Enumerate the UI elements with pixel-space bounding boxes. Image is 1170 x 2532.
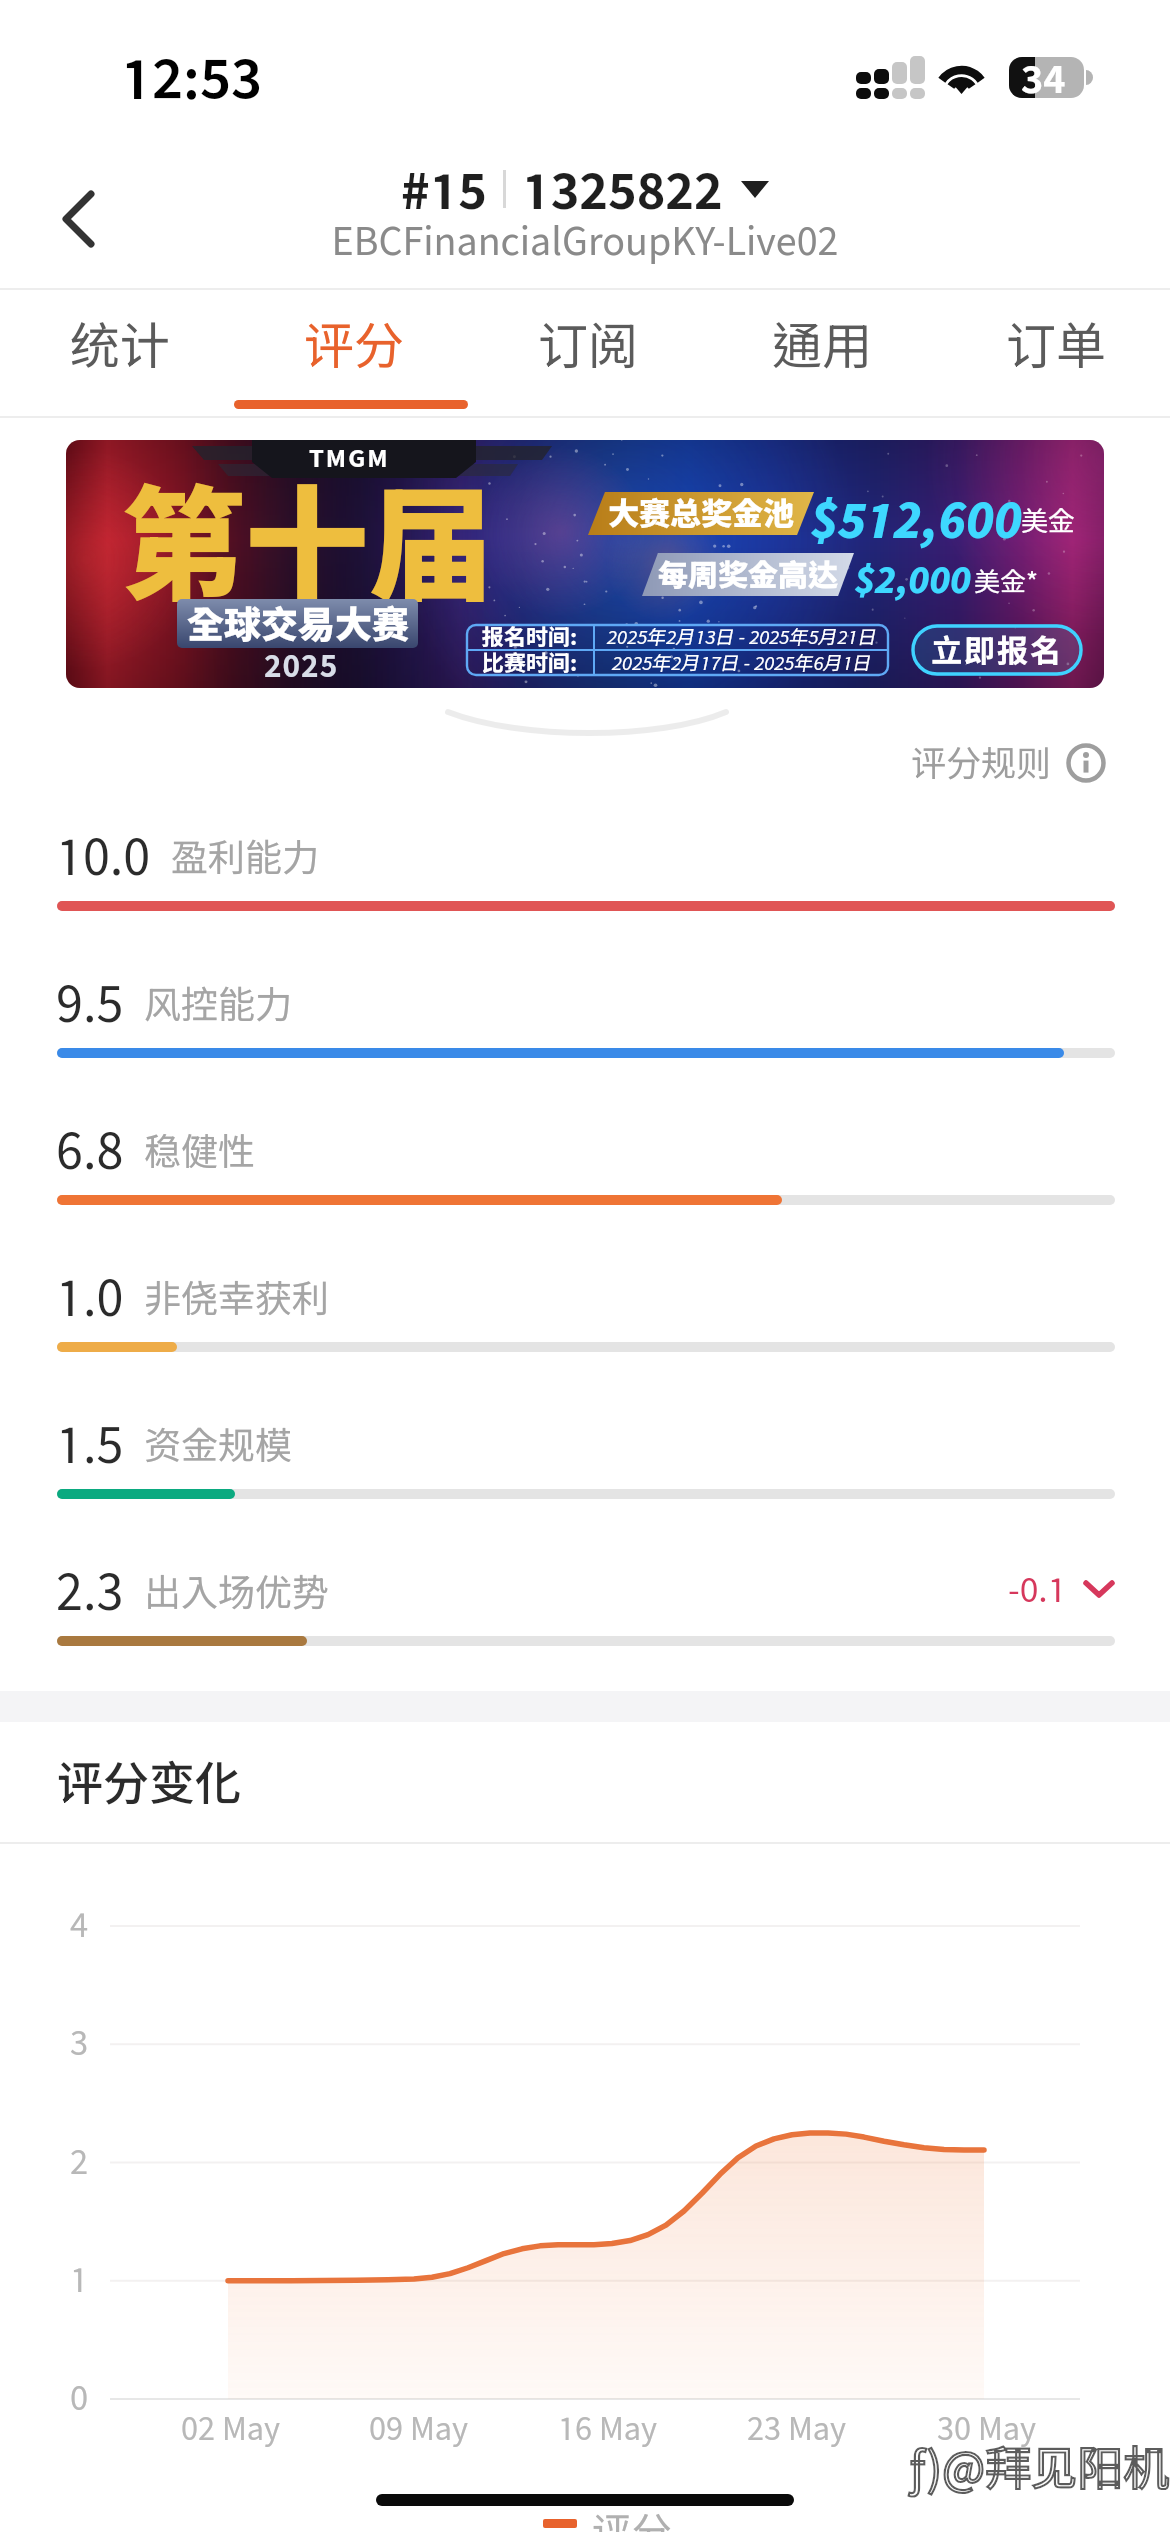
staticText: 3 [70, 2023, 89, 2062]
button[interactable]: 通用 [702, 290, 936, 418]
staticText: $512,600 [810, 490, 1022, 547]
staticText: 资金规模 [144, 1423, 292, 1467]
staticText: 30 May [937, 2410, 1037, 2447]
staticText: 2025 [264, 648, 339, 683]
staticText: 34 [1021, 56, 1066, 101]
staticText: 订单 [1006, 315, 1106, 374]
staticText: 12:53 [121, 46, 262, 110]
staticText: 16 May [558, 2410, 658, 2447]
staticText: 美金 [1021, 505, 1075, 537]
staticText: EBCFinancialGroupKY-Live02 [0, 218, 1170, 263]
staticText: 2 [70, 2142, 89, 2181]
staticText: 02 May [181, 2410, 281, 2447]
staticText: #15 [401, 160, 487, 218]
staticText: 1 [70, 2260, 89, 2299]
staticText: 评分 [592, 2508, 672, 2532]
button[interactable]: 订单 [936, 290, 1170, 418]
button[interactable]: 2.3 [0, 1515, 1170, 1662]
staticText: ƒ)@拜见阳机 [910, 2440, 1170, 2494]
button[interactable]: 评分 [234, 290, 468, 418]
staticText: 2025年2月17日 - 2025年6月1日 [612, 652, 872, 674]
button[interactable]: 订阅 [468, 290, 702, 418]
button[interactable]: TMGM [66, 440, 1104, 688]
staticText: 09 May [369, 2410, 469, 2447]
staticText: 盈利能力 [171, 835, 319, 879]
staticText: 全球交易大赛 [187, 602, 409, 646]
staticText: 通用 [772, 315, 872, 374]
staticText: 2.3 [56, 1561, 124, 1619]
staticText: 订阅 [538, 315, 638, 374]
staticText: 美金* [974, 566, 1039, 597]
staticText: TMGM [309, 444, 390, 472]
staticText: 稳健性 [144, 1129, 255, 1173]
staticText: 比赛时间: [482, 650, 578, 676]
staticText: 统计 [70, 315, 170, 374]
staticText: 10.0 [56, 826, 151, 884]
button[interactable]: 评分规则 [903, 734, 1114, 791]
button[interactable]: 6.8 [0, 1074, 1170, 1221]
button[interactable]: 9.5 [0, 927, 1170, 1074]
staticText: -0.1 [1008, 1569, 1067, 1609]
staticText: $2,000 [854, 558, 972, 600]
staticText: 4 [70, 1905, 89, 1944]
staticText: 23 May [747, 2410, 847, 2447]
staticText: 评分规则 [911, 742, 1052, 783]
button[interactable]: 1.5 [0, 1368, 1170, 1515]
staticText: 评分 [304, 315, 404, 374]
staticText: 0 [70, 2378, 89, 2417]
staticText: 评分变化 [57, 1755, 241, 1809]
staticText: 1325822 [522, 160, 723, 218]
staticText: 立即报名 [931, 632, 1063, 669]
button[interactable]: Back [25, 166, 131, 272]
staticText: 风控能力 [144, 982, 292, 1026]
button[interactable]: 10.0 [0, 780, 1170, 927]
staticText: 出入场优势 [144, 1570, 329, 1614]
button[interactable]: -0.1 [1000, 1561, 1123, 1617]
staticText: 1.0 [56, 1267, 124, 1325]
staticText: 报名时间: [482, 624, 578, 650]
staticText: 每周奖金高达 [658, 557, 838, 592]
button[interactable]: 统计 [0, 290, 234, 418]
staticText: 2025年2月13日 - 2025年5月21日 [607, 626, 877, 648]
button[interactable]: #15 [395, 156, 775, 222]
staticText: 大赛总奖金池 [608, 495, 794, 532]
staticText: 非侥幸获利 [144, 1276, 329, 1320]
staticText: 9.5 [56, 973, 124, 1031]
staticText: 6.8 [56, 1120, 124, 1178]
button[interactable]: 1.0 [0, 1221, 1170, 1368]
staticText: 1.5 [56, 1414, 124, 1472]
staticText: 第十届 [121, 470, 494, 616]
